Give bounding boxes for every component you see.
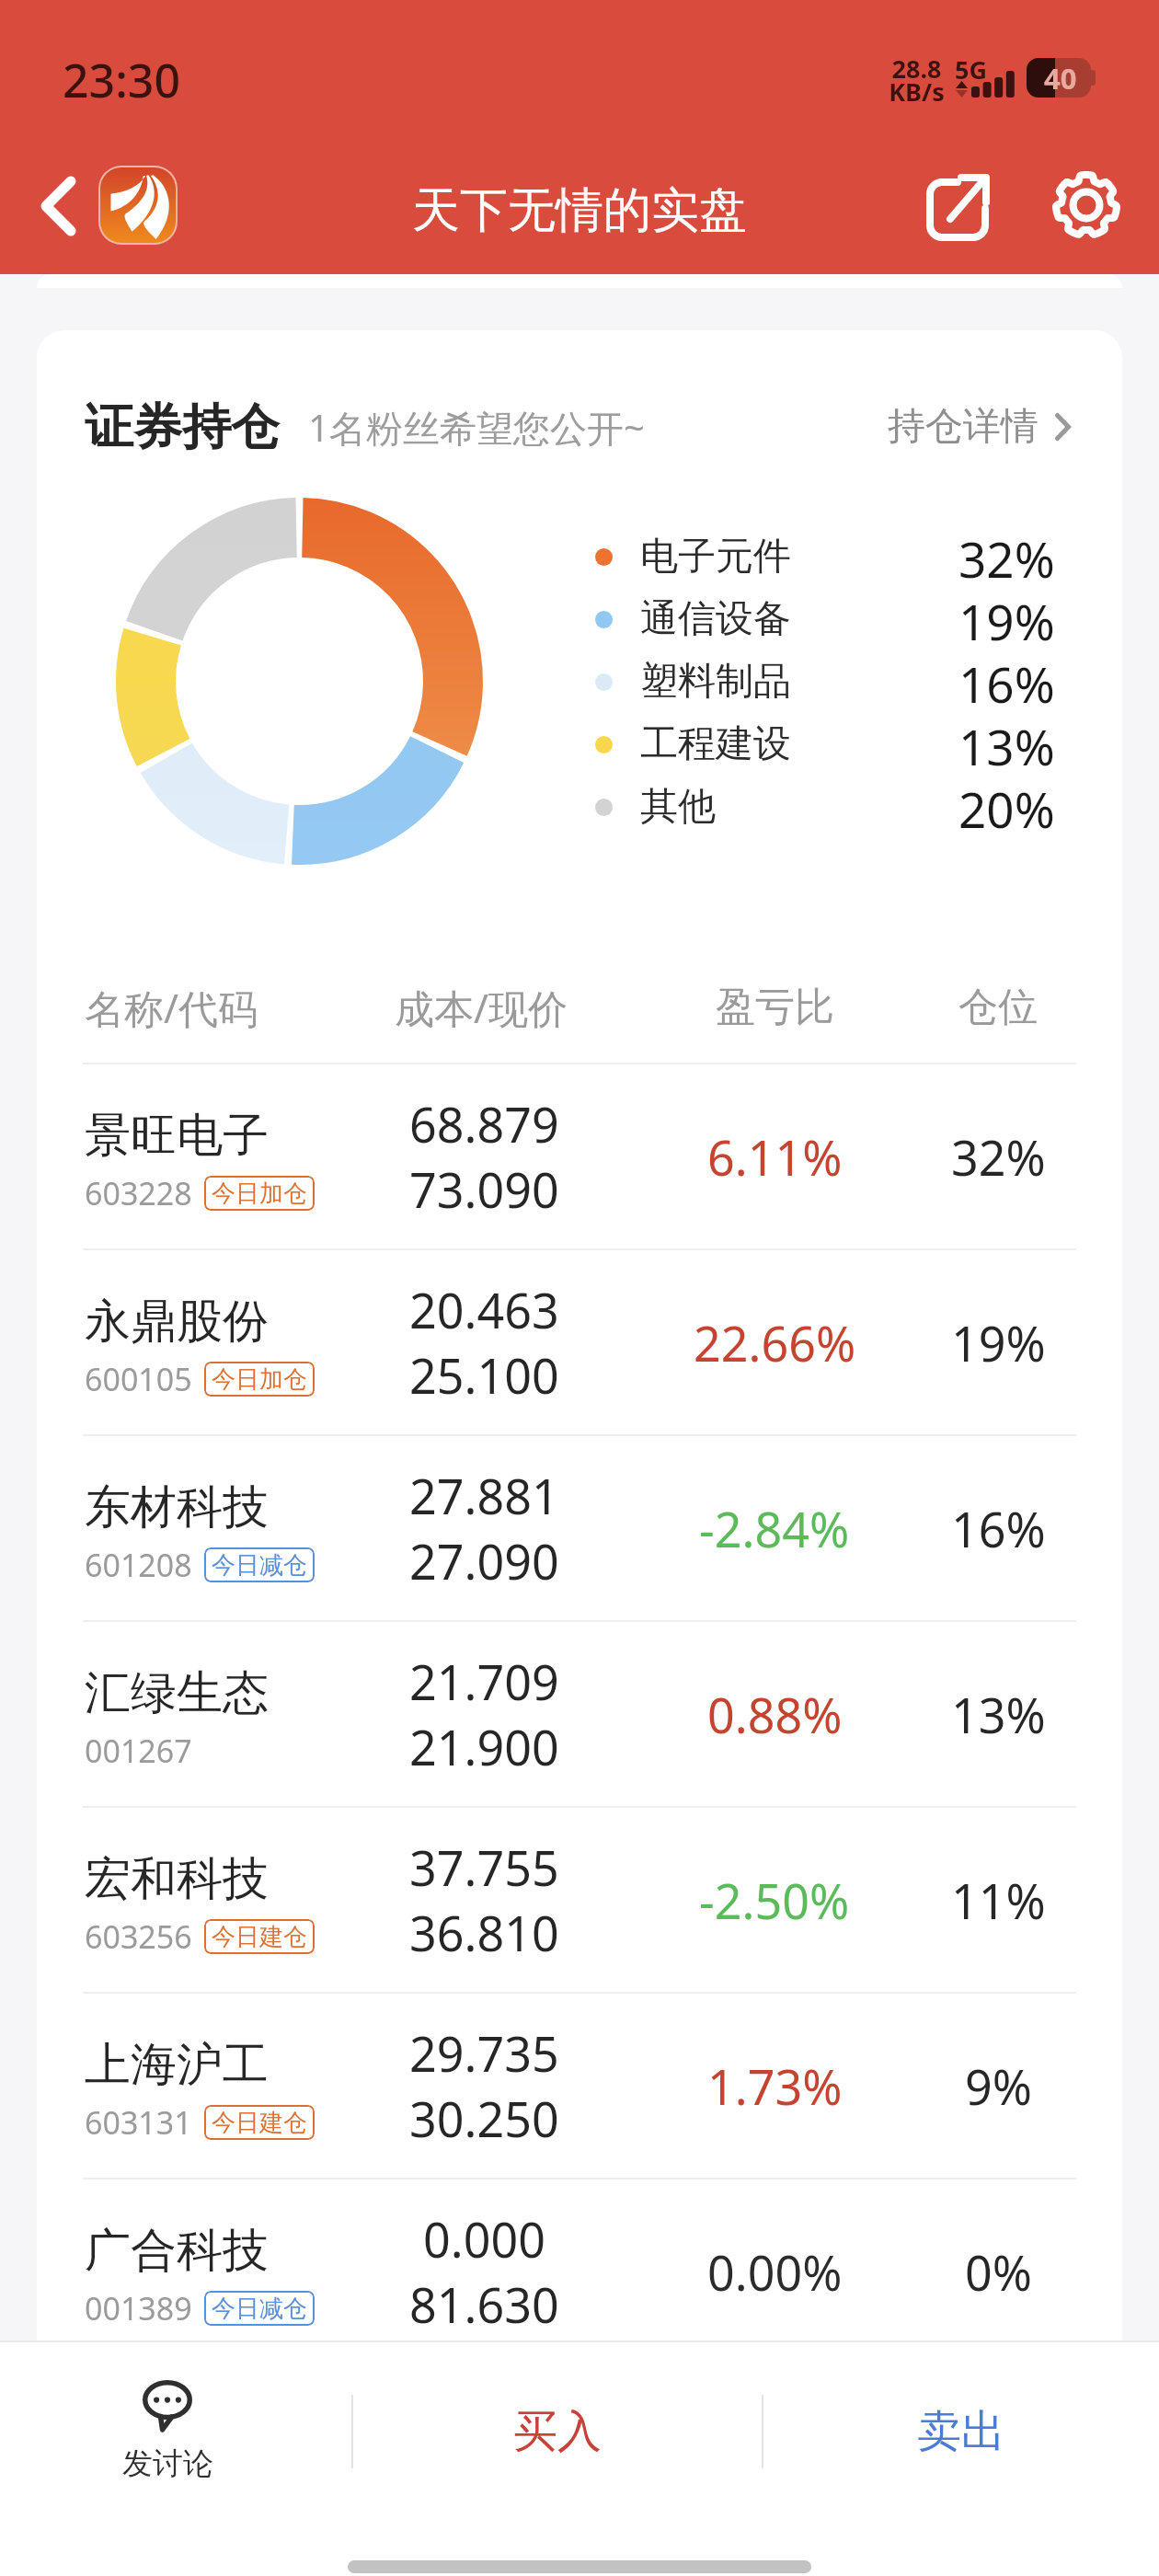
button[interactable]: 买入 bbox=[353, 2349, 762, 2514]
staticText: 13% bbox=[958, 713, 1055, 776]
staticText: 名称/代码 bbox=[85, 981, 258, 1035]
staticText: 买入 bbox=[513, 2404, 602, 2459]
staticText: 证券持仓 bbox=[85, 397, 280, 458]
staticText: 天下无情的实盘 bbox=[412, 180, 747, 241]
staticText: 19% bbox=[951, 1310, 1046, 1375]
staticText: 81.630 bbox=[409, 2271, 559, 2337]
staticText: 仓位 bbox=[958, 983, 1038, 1032]
staticText: 36.810 bbox=[409, 1900, 559, 1965]
staticText: 宏和科技 bbox=[85, 1850, 269, 1908]
staticText: 32% bbox=[958, 525, 1055, 588]
staticText: 16% bbox=[958, 650, 1055, 713]
staticText: 22.66% bbox=[694, 1310, 856, 1375]
button[interactable]: 上海沪工 bbox=[37, 1994, 1122, 2178]
button[interactable]: 广合科技 bbox=[37, 2179, 1122, 2340]
staticText: -2.84% bbox=[699, 1496, 850, 1561]
staticText: 603228 bbox=[85, 1172, 192, 1214]
button[interactable]: 发讨论 bbox=[0, 2349, 335, 2514]
staticText: 20% bbox=[958, 776, 1055, 838]
staticText: 001267 bbox=[85, 1730, 192, 1772]
staticText: 工程建设 bbox=[640, 720, 791, 768]
staticText: 21.900 bbox=[409, 1714, 559, 1779]
staticText: 21.709 bbox=[409, 1649, 559, 1714]
button[interactable]: 汇绿生态 bbox=[37, 1622, 1122, 1806]
staticText: 20.463 bbox=[409, 1277, 559, 1342]
staticText: 40 bbox=[1044, 59, 1077, 98]
staticText: 卖出 bbox=[917, 2404, 1005, 2459]
button[interactable]: 景旺电子 bbox=[37, 1064, 1122, 1248]
staticText: 今日加仓 bbox=[212, 1179, 307, 1209]
button[interactable]: Settings bbox=[1040, 159, 1132, 251]
staticText: 25.100 bbox=[409, 1342, 559, 1408]
staticText: 600105 bbox=[85, 1358, 192, 1400]
staticText: 37.755 bbox=[409, 1834, 559, 1900]
staticText: -2.50% bbox=[699, 1868, 850, 1933]
staticText: 其他 bbox=[640, 783, 716, 831]
staticText: 28.8 KB/s bbox=[889, 52, 945, 109]
staticText: 发讨论 bbox=[122, 2444, 213, 2483]
staticText: 盈亏比 bbox=[716, 983, 834, 1032]
staticText: 68.879 bbox=[409, 1091, 559, 1156]
staticText: 持仓详情 bbox=[888, 403, 1039, 451]
staticText: 19% bbox=[958, 588, 1055, 650]
staticText: 9% bbox=[965, 2053, 1032, 2119]
staticText: 30.250 bbox=[409, 2086, 559, 2151]
button[interactable]: Share bbox=[912, 159, 1004, 251]
button[interactable]: 永鼎股份 bbox=[37, 1250, 1122, 1434]
staticText: 通信设备 bbox=[640, 595, 791, 643]
staticText: 27.881 bbox=[409, 1463, 559, 1528]
staticText: 塑料制品 bbox=[640, 658, 791, 706]
staticText: 29.735 bbox=[409, 2020, 559, 2086]
button[interactable]: Eastmoney bbox=[100, 167, 176, 243]
staticText: 1名粉丝希望您公开~ bbox=[308, 402, 645, 453]
button[interactable]: 宏和科技 bbox=[37, 1808, 1122, 1992]
staticText: 电子元件 bbox=[640, 533, 791, 581]
staticText: 11% bbox=[951, 1868, 1046, 1933]
staticText: 0.00% bbox=[707, 2239, 843, 2305]
staticText: 汇绿生态 bbox=[85, 1664, 269, 1722]
staticText: 6.11% bbox=[707, 1124, 843, 1190]
staticText: 上海沪工 bbox=[85, 2036, 269, 2094]
staticText: 今日加仓 bbox=[212, 1364, 307, 1395]
staticText: 广合科技 bbox=[85, 2222, 269, 2280]
staticText: 23:30 bbox=[63, 49, 180, 111]
staticText: 今日减仓 bbox=[212, 1550, 307, 1581]
staticText: 今日减仓 bbox=[212, 2294, 307, 2324]
staticText: 13% bbox=[951, 1682, 1046, 1747]
staticText: 5G bbox=[955, 52, 987, 86]
staticText: 永鼎股份 bbox=[85, 1293, 269, 1351]
staticText: 今日建仓 bbox=[212, 2108, 307, 2138]
staticText: 0% bbox=[965, 2239, 1032, 2305]
staticText: 601208 bbox=[85, 1544, 192, 1586]
button[interactable]: 东材科技 bbox=[37, 1436, 1122, 1620]
staticText: 603256 bbox=[85, 1915, 192, 1958]
staticText: 16% bbox=[951, 1496, 1046, 1561]
button[interactable]: 持仓详情 bbox=[888, 390, 1071, 464]
staticText: 73.090 bbox=[409, 1156, 559, 1222]
staticText: 0.000 bbox=[423, 2206, 545, 2271]
staticText: 27.090 bbox=[409, 1528, 559, 1593]
staticText: 今日建仓 bbox=[212, 1922, 307, 1952]
button[interactable]: 卖出 bbox=[763, 2349, 1159, 2514]
staticText: 001389 bbox=[85, 2287, 192, 2329]
staticText: 32% bbox=[951, 1124, 1046, 1190]
staticText: 景旺电子 bbox=[85, 1107, 269, 1165]
staticText: 603131 bbox=[85, 2101, 192, 2144]
staticText: 成本/现价 bbox=[395, 981, 568, 1035]
staticText: 1.73% bbox=[707, 2053, 843, 2119]
button[interactable]: Back bbox=[16, 164, 100, 248]
staticText: 0.88% bbox=[707, 1682, 843, 1747]
staticText: 东材科技 bbox=[85, 1478, 269, 1536]
